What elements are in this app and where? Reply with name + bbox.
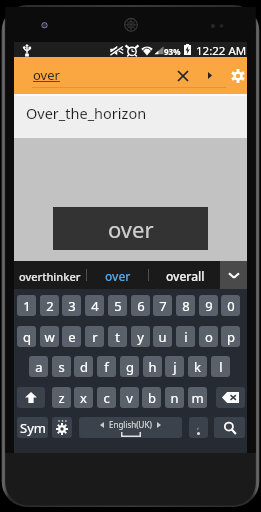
staticText: Over_the_horizon <box>26 103 147 123</box>
staticText: o <box>205 328 213 346</box>
button[interactable]: b <box>142 387 161 408</box>
button[interactable]: y <box>131 326 150 347</box>
button[interactable]: r <box>85 326 104 347</box>
button[interactable]: English(UK) <box>79 417 182 438</box>
button[interactable]: v <box>120 387 139 408</box>
staticText: l <box>219 358 223 376</box>
button[interactable]: 1 <box>17 295 36 316</box>
staticText: Sym <box>20 419 46 437</box>
button[interactable]: n <box>165 387 184 408</box>
staticText: a <box>35 358 43 376</box>
button[interactable]: 0 <box>221 295 240 316</box>
button[interactable]: j <box>165 356 184 377</box>
button[interactable]: over <box>53 207 208 250</box>
staticText: 6 <box>137 297 145 315</box>
staticText: over <box>33 66 60 84</box>
staticText: 7 <box>159 297 167 315</box>
button[interactable]: t <box>108 326 127 347</box>
staticText: 93% <box>164 46 181 57</box>
staticText: n <box>170 389 179 407</box>
staticText: 1 <box>23 297 31 315</box>
button[interactable]: 2 <box>40 295 59 316</box>
staticText: r <box>92 328 98 346</box>
button[interactable]: h <box>143 356 162 377</box>
staticText: q <box>23 328 31 346</box>
button[interactable]: m <box>188 387 207 408</box>
button[interactable]: 3 <box>62 295 81 316</box>
staticText: x <box>80 389 87 407</box>
button[interactable]: Keyboard settings <box>52 417 72 438</box>
button[interactable]: l <box>211 356 230 377</box>
staticText: g <box>126 358 134 376</box>
button[interactable]: s <box>52 356 71 377</box>
staticText: b <box>148 389 156 407</box>
staticText: 0 <box>227 297 235 315</box>
button[interactable]: 5 <box>108 295 127 316</box>
button[interactable]: overall <box>149 261 221 289</box>
button[interactable]: 4 <box>85 295 104 316</box>
button[interactable]: Show more <box>199 57 221 94</box>
staticText: 4 <box>91 297 99 315</box>
button[interactable]: overthinker <box>14 261 86 289</box>
button[interactable]: z <box>52 387 71 408</box>
button[interactable]: o <box>199 326 218 347</box>
staticText: English(UK) <box>109 419 152 430</box>
staticText: i <box>184 328 188 346</box>
button[interactable]: i <box>176 326 195 347</box>
button[interactable]: u <box>153 326 172 347</box>
staticText: 2 <box>46 297 54 315</box>
button[interactable]: e <box>62 326 81 347</box>
button[interactable]: over <box>87 261 148 289</box>
staticText: d <box>80 358 88 376</box>
staticText: 3 <box>68 297 76 315</box>
button[interactable]: 7 <box>153 295 172 316</box>
button[interactable]: Clear text <box>170 57 195 94</box>
button[interactable]: p <box>221 326 240 347</box>
button[interactable]: k <box>188 356 207 377</box>
staticText: 9 <box>205 297 213 315</box>
button[interactable]: w <box>40 326 59 347</box>
button[interactable]: q <box>17 326 36 347</box>
button[interactable]: Shift <box>17 387 45 408</box>
staticText: v <box>126 389 133 407</box>
staticText: w <box>44 328 55 346</box>
button[interactable]: g <box>120 356 139 377</box>
button[interactable]: d <box>74 356 93 377</box>
button[interactable]: Search <box>214 417 245 438</box>
staticText: f <box>104 358 109 376</box>
button[interactable]: 8 <box>176 295 195 316</box>
staticText: k <box>194 358 201 376</box>
button[interactable]: Over_the_horizon <box>14 96 247 138</box>
staticText: 12:22 AM <box>196 43 247 58</box>
staticText: p <box>227 328 235 346</box>
button[interactable]: f <box>97 356 116 377</box>
staticText: overall <box>166 268 205 284</box>
button[interactable]: 9 <box>199 295 218 316</box>
staticText: s <box>58 358 65 376</box>
staticText: y <box>137 328 144 346</box>
staticText: h <box>148 358 157 376</box>
staticText: z <box>58 389 65 407</box>
button[interactable]: Backspace <box>216 387 245 408</box>
staticText: overthinker <box>19 269 81 284</box>
staticText: e <box>68 328 76 346</box>
button[interactable]: a <box>29 356 48 377</box>
button[interactable]: Expand suggestions <box>220 261 247 289</box>
staticText: over <box>105 268 131 284</box>
button[interactable]: , <box>189 417 208 438</box>
staticText: u <box>158 328 167 346</box>
button[interactable]: 6 <box>131 295 150 316</box>
button[interactable]: Settings <box>227 57 249 94</box>
staticText: , <box>197 420 200 431</box>
staticText: c <box>103 389 110 407</box>
button[interactable]: c <box>97 387 116 408</box>
button[interactable]: x <box>74 387 93 408</box>
staticText: 5 <box>114 297 122 315</box>
staticText: j <box>173 358 177 376</box>
staticText: over <box>108 214 154 244</box>
staticText: m <box>191 389 204 407</box>
button[interactable]: Sym <box>17 417 48 438</box>
staticText: t <box>115 328 120 346</box>
staticText: 8 <box>182 297 190 315</box>
